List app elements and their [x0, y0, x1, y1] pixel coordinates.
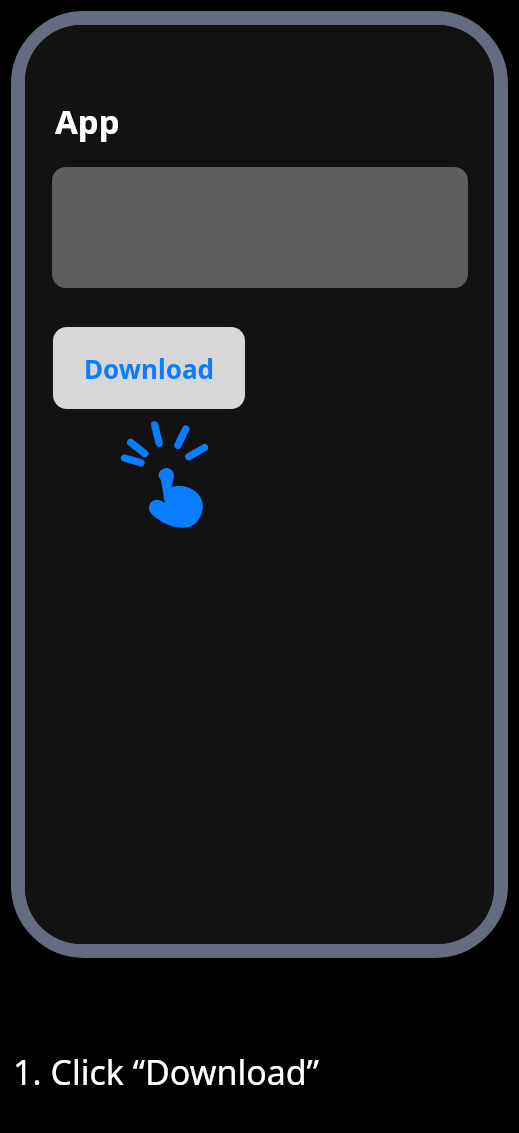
other: Tap Download	[131, 448, 217, 534]
staticText: Download	[84, 351, 214, 386]
staticText: 1. Click “Download”	[13, 1049, 319, 1095]
button[interactable]: Download	[53, 327, 245, 409]
staticText: App	[55, 99, 120, 144]
button[interactable]	[52, 167, 468, 288]
